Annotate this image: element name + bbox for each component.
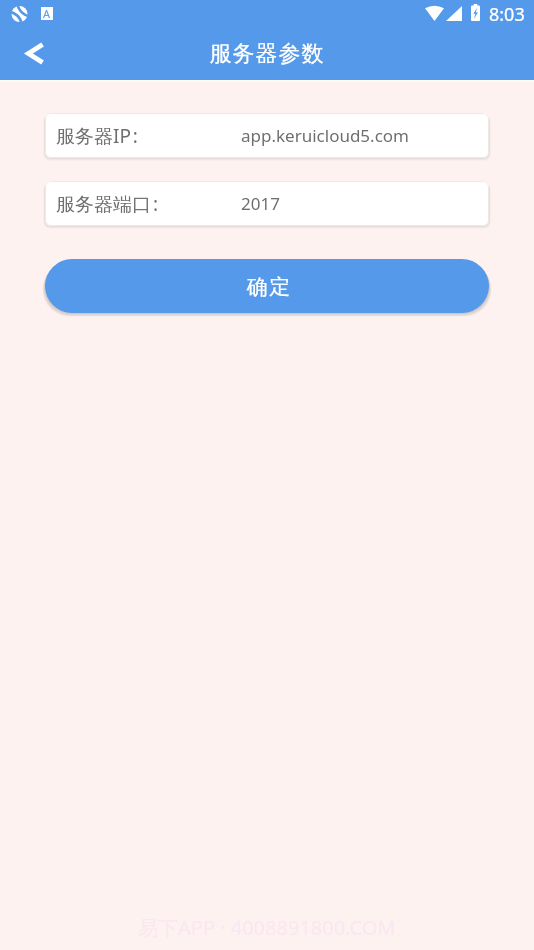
staticText: 确定 (246, 274, 291, 300)
staticText: 8:03 (489, 2, 525, 27)
button[interactable]: 服务器IP : (45, 113, 489, 158)
staticText: 服务器IP : (56, 123, 138, 149)
staticText: 服务器端口 : (56, 191, 158, 217)
button[interactable]: Back (8, 33, 62, 73)
staticText: app.keruicloud5.com (241, 124, 409, 147)
staticText: 易下APP · 4008891800.COM (138, 914, 396, 941)
staticText: 服务器参数 (209, 40, 324, 68)
button[interactable]: 服务器端口 : (45, 181, 489, 226)
staticText: A (43, 6, 51, 19)
staticText: 2017 (241, 192, 280, 215)
button[interactable]: 确定 (45, 259, 489, 313)
